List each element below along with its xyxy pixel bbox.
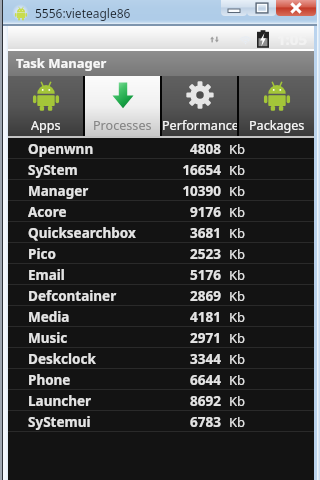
staticText: Kb: [229, 161, 314, 179]
staticText: Quicksearchbox: [28, 224, 136, 242]
staticText: Openwnn: [28, 140, 94, 158]
button[interactable]: Quicksearchbox: [8, 222, 314, 243]
button[interactable]: Phone: [8, 369, 314, 390]
staticText: Task Manager: [16, 54, 107, 72]
staticText: Kb: [229, 308, 314, 326]
staticText: 4181: [161, 308, 221, 326]
staticText: 4808: [161, 140, 221, 158]
button[interactable]: Acore: [8, 201, 314, 222]
button[interactable]: Music: [8, 327, 314, 348]
staticText: Apps: [31, 117, 61, 134]
staticText: Kb: [229, 413, 314, 431]
staticText: Kb: [229, 350, 314, 368]
staticText: Acore: [28, 203, 67, 221]
button[interactable]: SyStem: [8, 159, 314, 180]
staticText: Launcher: [28, 392, 92, 410]
button[interactable]: Openwnn: [8, 138, 314, 159]
staticText: Kb: [229, 371, 314, 389]
button[interactable]: SyStemui: [8, 411, 314, 432]
staticText: Kb: [229, 266, 314, 284]
button[interactable]: Pico: [8, 243, 314, 264]
staticText: 10390: [161, 182, 221, 200]
staticText: Processes: [93, 117, 152, 134]
staticText: 2971: [161, 329, 221, 347]
staticText: Kb: [229, 245, 314, 263]
button[interactable]: Performance: [162, 76, 237, 136]
staticText: Pico: [28, 245, 56, 263]
staticText: Manager: [28, 182, 89, 200]
staticText: Kb: [229, 182, 314, 200]
button[interactable]: Email: [8, 264, 314, 285]
staticText: Kb: [229, 203, 314, 221]
button[interactable]: Manager: [8, 180, 314, 201]
button[interactable]: Processes: [85, 76, 160, 136]
button[interactable]: Maximize: [247, 0, 276, 16]
staticText: 5176: [161, 266, 221, 284]
staticText: Media: [28, 308, 70, 326]
button[interactable]: Minimize: [221, 0, 247, 16]
staticText: 2523: [161, 245, 221, 263]
staticText: Kb: [229, 329, 314, 347]
staticText: Music: [28, 329, 68, 347]
staticText: Phone: [28, 371, 71, 389]
staticText: 3344: [161, 350, 221, 368]
staticText: 5556:vieteagle86: [35, 5, 131, 21]
staticText: 1:05: [277, 29, 307, 49]
staticText: Kb: [229, 287, 314, 305]
staticText: Kb: [229, 392, 314, 410]
staticText: 6783: [161, 413, 221, 431]
button[interactable]: Apps: [8, 76, 83, 136]
button[interactable]: Packages: [239, 76, 314, 136]
staticText: Email: [28, 266, 65, 284]
button[interactable]: Close: [276, 0, 316, 16]
staticText: 6644: [161, 371, 221, 389]
button[interactable]: Launcher: [8, 390, 314, 411]
staticText: 2869: [161, 287, 221, 305]
staticText: 16654: [161, 161, 221, 179]
staticText: Defcontainer: [28, 287, 117, 305]
button[interactable]: Media: [8, 306, 314, 327]
button[interactable]: Deskclock: [8, 348, 314, 369]
staticText: 3681: [161, 224, 221, 242]
staticText: Packages: [249, 117, 305, 134]
staticText: Kb: [229, 224, 314, 242]
staticText: 9176: [161, 203, 221, 221]
staticText: Deskclock: [28, 350, 96, 368]
button[interactable]: Defcontainer: [8, 285, 314, 306]
staticText: SyStem: [28, 161, 78, 179]
staticText: Kb: [229, 140, 314, 158]
staticText: Performance: [162, 117, 237, 134]
staticText: SyStemui: [28, 413, 91, 431]
staticText: 8692: [161, 392, 221, 410]
